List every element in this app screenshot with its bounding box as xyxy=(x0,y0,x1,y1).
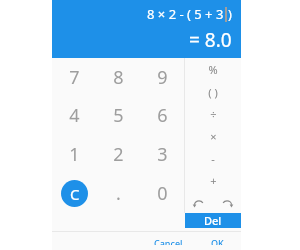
staticText: - xyxy=(211,151,215,166)
button[interactable]: 2 xyxy=(96,135,140,174)
button[interactable]: - xyxy=(185,147,241,169)
staticText: ÷ xyxy=(210,107,217,122)
staticText: × xyxy=(210,129,217,144)
button[interactable]: C xyxy=(61,180,88,207)
staticText: = 8.0 xyxy=(189,27,232,53)
staticText: . xyxy=(116,181,121,206)
staticText: + xyxy=(210,173,217,188)
staticText: OK xyxy=(211,237,224,245)
button[interactable]: ÷ xyxy=(185,103,241,125)
button[interactable]: ( ) xyxy=(185,81,241,103)
button[interactable]: Del xyxy=(185,213,241,228)
button[interactable]: × xyxy=(185,125,241,147)
button[interactable]: 4 xyxy=(52,96,96,135)
button[interactable]: % xyxy=(185,58,241,81)
staticText: 1 xyxy=(69,142,80,167)
staticText: 8 xyxy=(113,65,124,90)
button[interactable]: 7 xyxy=(52,58,96,96)
button[interactable]: Redo xyxy=(213,191,241,213)
staticText: 0 xyxy=(157,181,168,206)
staticText: 9 xyxy=(157,65,168,90)
staticText: 2 xyxy=(113,142,124,167)
staticText: ) xyxy=(228,5,232,23)
staticText: 7 xyxy=(69,65,80,90)
staticText: 3 xyxy=(157,142,168,167)
button[interactable]: Undo xyxy=(185,191,213,213)
staticText: 4 xyxy=(69,103,80,128)
staticText: ( ) xyxy=(208,85,218,100)
button[interactable]: 3 xyxy=(140,135,184,174)
staticText: 8 × 2 - ( 5 + 3 xyxy=(147,5,224,23)
button[interactable]: . xyxy=(96,174,140,213)
staticText: 5 xyxy=(113,103,124,128)
button[interactable]: 0 xyxy=(140,174,184,213)
staticText: % xyxy=(208,62,218,77)
button[interactable]: + xyxy=(185,169,241,191)
button[interactable]: 8 xyxy=(96,58,140,96)
staticText: Del xyxy=(204,213,222,228)
button[interactable]: 1 xyxy=(52,135,96,174)
staticText: 6 xyxy=(157,103,168,128)
staticText: C xyxy=(70,184,80,204)
button[interactable]: 9 xyxy=(140,58,184,96)
button[interactable]: OK xyxy=(204,232,231,250)
button[interactable]: 5 xyxy=(96,96,140,135)
button[interactable]: 6 xyxy=(140,96,184,135)
staticText: Cancel xyxy=(154,237,183,245)
button[interactable]: Cancel xyxy=(147,232,190,250)
